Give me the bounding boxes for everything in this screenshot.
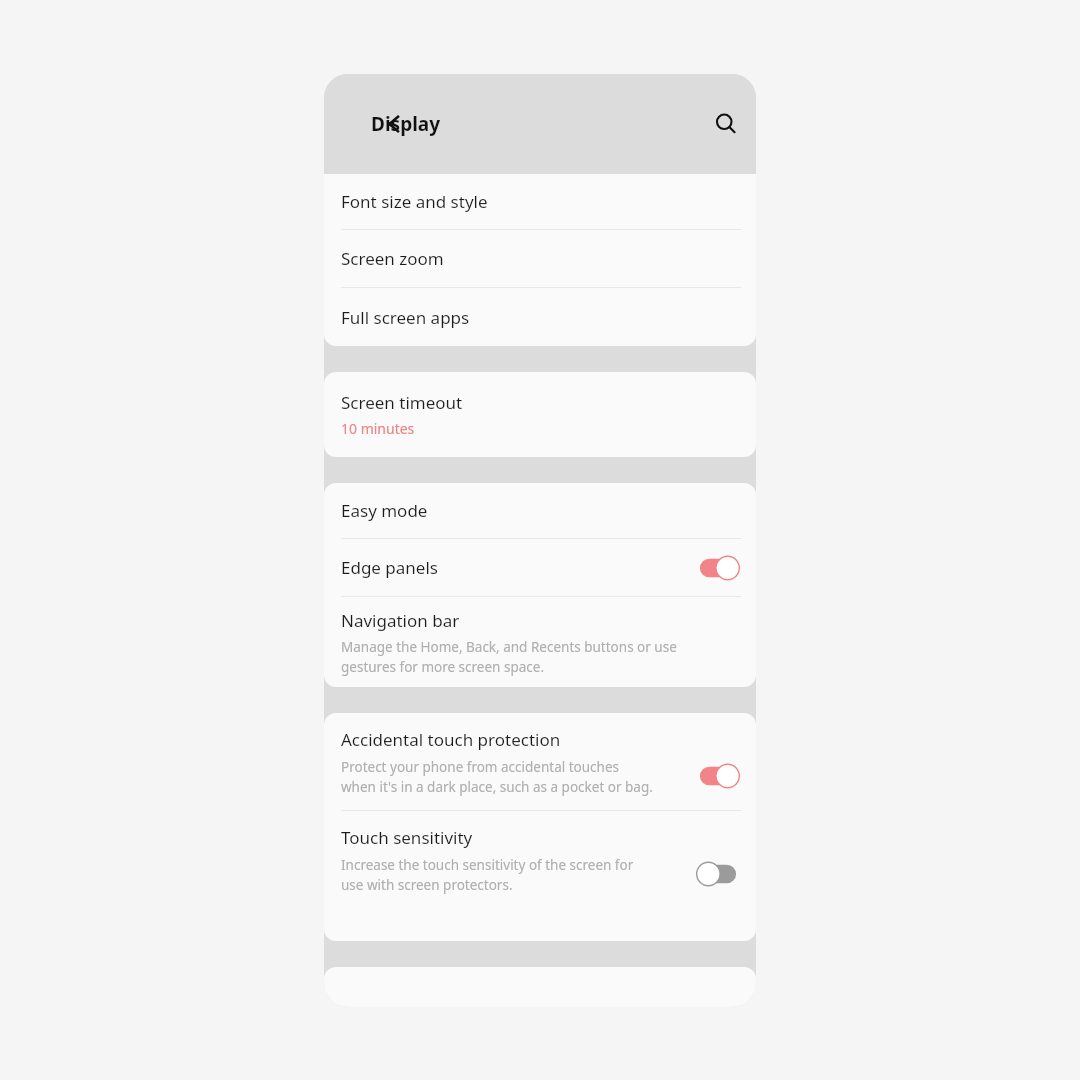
staticText: Manage the Home, Back, and Recents butto… — [341, 638, 677, 676]
staticText: Screen zoom — [341, 247, 444, 270]
staticText: Full screen apps — [341, 306, 470, 329]
button[interactable]: On — [697, 555, 739, 581]
button[interactable]: Accidental touch protection — [324, 713, 756, 810]
button[interactable]: Easy mode — [324, 483, 756, 538]
button[interactable]: Touch sensitivity — [324, 811, 756, 908]
staticText: Increase the touch sensitivity of the sc… — [341, 856, 634, 894]
staticText: Protect your phone from accidental touch… — [341, 758, 653, 796]
button[interactable]: Navigation bar — [324, 597, 756, 687]
button[interactable]: Back — [372, 102, 416, 146]
staticText: Font size and style — [341, 190, 488, 213]
staticText: 10 minutes — [341, 419, 415, 438]
staticText: Easy mode — [341, 499, 428, 522]
staticText: Edge panels — [341, 556, 697, 579]
button[interactable]: Search — [704, 102, 748, 146]
staticText: Touch sensitivity — [341, 826, 473, 849]
button[interactable]: Edge panels — [324, 539, 756, 596]
staticText: Navigation bar — [341, 609, 460, 632]
button[interactable]: Screen timeout — [324, 372, 756, 457]
staticText: Display — [371, 111, 441, 137]
button[interactable]: Full screen apps — [324, 288, 756, 346]
button[interactable]: Screen zoom — [324, 230, 756, 287]
button[interactable]: Font size and style — [324, 174, 756, 229]
staticText: Screen timeout — [341, 391, 463, 414]
button[interactable]: Off — [697, 861, 739, 887]
staticText: Accidental touch protection — [341, 728, 561, 751]
button[interactable]: On — [697, 763, 739, 789]
